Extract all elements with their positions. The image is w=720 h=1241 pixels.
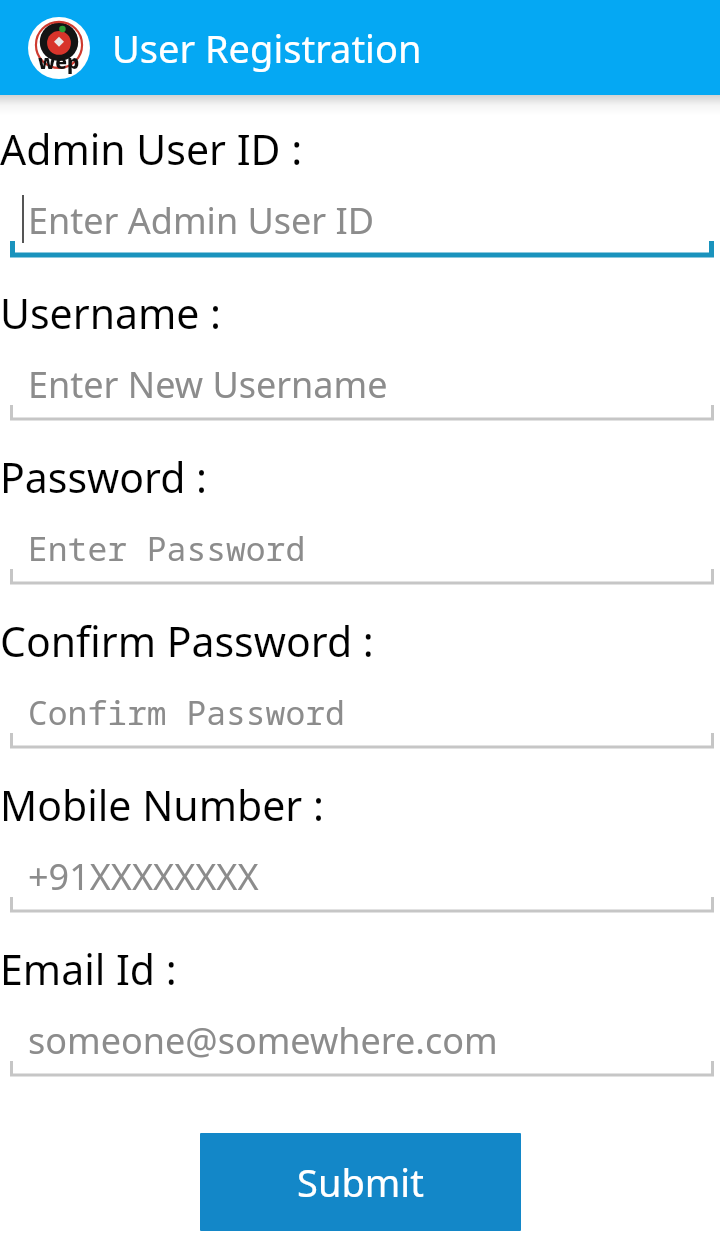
button[interactable]: Password :: [0, 449, 720, 591]
button[interactable]: Confirm Password :: [0, 613, 720, 755]
button[interactable]: Admin User ID :: [0, 121, 720, 263]
staticText: Confirm Password: [28, 690, 345, 735]
staticText: someone@somewhere.com: [28, 1016, 498, 1065]
button[interactable]: Email Id :: [0, 941, 720, 1083]
button[interactable]: Username :: [0, 285, 720, 427]
staticText: User Registration: [112, 22, 422, 74]
staticText: Submit: [297, 1156, 424, 1208]
staticText: Enter Admin User ID: [28, 196, 375, 245]
staticText: Email Id :: [0, 941, 177, 997]
staticText: +91XXXXXXXX: [28, 852, 259, 901]
staticText: wep: [38, 49, 80, 75]
staticText: Admin User ID :: [0, 121, 303, 177]
staticText: Mobile Number :: [0, 777, 324, 833]
staticText: Confirm Password :: [0, 613, 374, 669]
staticText: Username :: [0, 285, 222, 341]
staticText: Enter Password: [28, 526, 306, 571]
button[interactable]: Mobile Number :: [0, 777, 720, 919]
button[interactable]: Submit: [200, 1133, 521, 1231]
staticText: Enter New Username: [28, 360, 388, 409]
staticText: Password :: [0, 449, 208, 505]
